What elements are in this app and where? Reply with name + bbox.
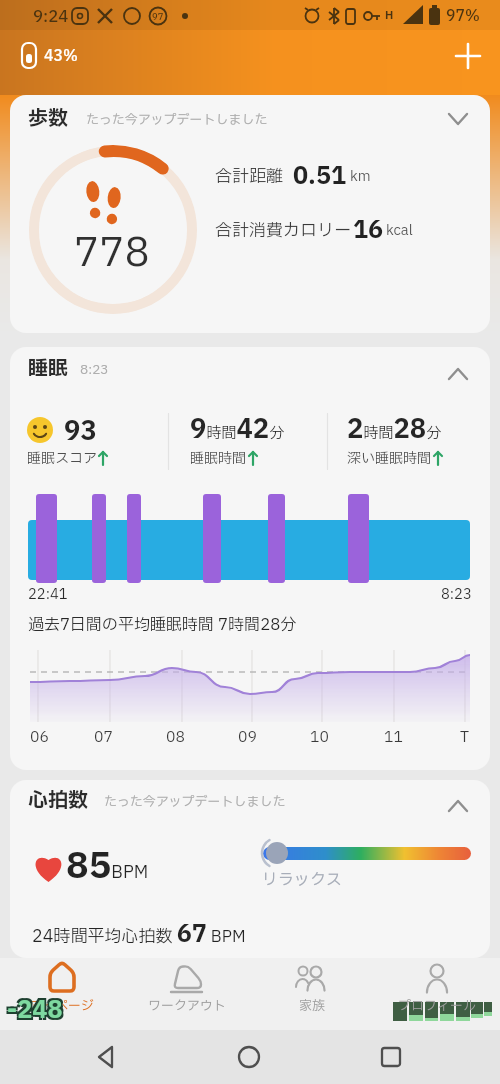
staticText: H (385, 7, 394, 24)
staticText: 深い睡眠時間 (347, 448, 431, 469)
staticText: 睡眠スコア (27, 448, 97, 469)
staticText: 11 (384, 726, 403, 748)
staticText: 9:24 (33, 5, 69, 29)
staticText: 睡眠時間 (190, 448, 246, 469)
staticText: 2時間28分 (347, 410, 442, 449)
staticText: 16 (353, 213, 384, 249)
button[interactable] (10, 95, 490, 333)
staticText: 心拍数 (28, 786, 88, 816)
staticText: 睡眠 (28, 354, 68, 384)
staticText: -248 (9, 991, 65, 1027)
button[interactable] (10, 347, 490, 770)
staticText: -248 (9, 995, 65, 1031)
staticText: 43% (44, 45, 78, 67)
staticText: プロフィール (398, 996, 477, 1015)
staticText: 歩数 (28, 104, 68, 134)
staticText: 家族 (299, 996, 326, 1015)
staticText: たった今アップデートしました (104, 792, 286, 811)
staticText: 0.51 (293, 159, 347, 195)
button[interactable] (448, 38, 488, 78)
staticText: 07 (94, 726, 113, 748)
staticText: ワークアウト (148, 996, 226, 1015)
staticText: 8:23 (441, 584, 472, 605)
staticText: -248 (5, 991, 61, 1027)
staticText: 97 (152, 10, 164, 23)
staticText: 93 (64, 412, 97, 451)
button[interactable] (10, 780, 490, 958)
staticText: 過去7日間の平均睡眠時間 7時間28分 (28, 613, 297, 637)
staticText: 9時間42分 (190, 410, 285, 449)
button[interactable] (387, 958, 487, 1030)
staticText: kcal (386, 220, 413, 241)
staticText: マイページ (30, 996, 95, 1015)
button[interactable] (262, 958, 362, 1030)
staticText: km (350, 166, 371, 187)
staticText: リラックス (262, 868, 342, 892)
staticText: 08 (166, 726, 185, 748)
staticText: 合計消費カロリー (215, 218, 351, 243)
button[interactable] (137, 958, 237, 1030)
staticText: 85BPM (66, 840, 149, 894)
staticText: 22:41 (28, 584, 68, 605)
staticText: 778 (74, 224, 150, 284)
staticText: -248 (5, 995, 61, 1031)
staticText: 24時間平均心拍数 67 BPM (32, 917, 246, 953)
staticText: T (460, 726, 470, 748)
staticText: 97% (446, 5, 480, 27)
staticText: 10 (310, 726, 329, 748)
staticText: 8:23 (80, 360, 109, 379)
staticText: 09 (238, 726, 257, 748)
button[interactable] (12, 958, 112, 1030)
staticText: -248 (7, 993, 63, 1029)
staticText: たった今アップデートしました (86, 110, 268, 129)
staticText: 合計距離 (215, 164, 283, 189)
staticText: 06 (30, 726, 49, 748)
